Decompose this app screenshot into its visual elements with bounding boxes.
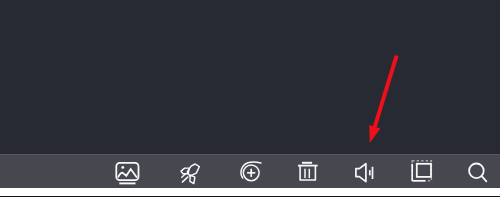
button[interactable]: Volume [350,157,382,189]
button[interactable]: Delete [293,157,325,189]
button[interactable]: Screenshot [110,157,142,189]
button[interactable]: Picture in picture [407,156,439,188]
button[interactable]: Search [462,157,494,189]
button[interactable]: Add [235,157,267,189]
button[interactable]: Rocket [176,158,208,190]
